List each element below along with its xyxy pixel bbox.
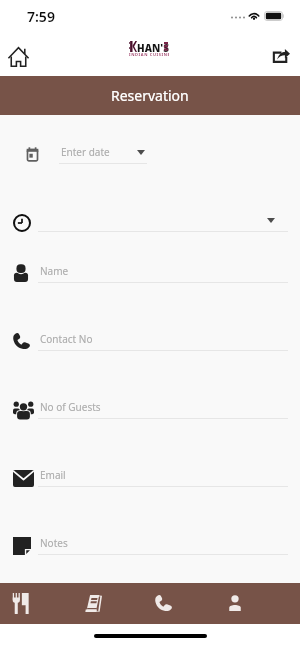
- staticText: Name: [40, 264, 69, 278]
- button[interactable]: Profile: [210, 583, 282, 624]
- staticText: Contact No: [40, 332, 93, 346]
- button[interactable]: Menu: [66, 583, 138, 624]
- button[interactable]: [8, 260, 292, 286]
- button[interactable]: Home: [0, 37, 37, 73]
- staticText: HAN'S: [137, 41, 169, 55]
- button[interactable]: [8, 328, 292, 354]
- button[interactable]: [8, 141, 292, 167]
- button[interactable]: Select time: [8, 209, 292, 235]
- button[interactable]: Share: [264, 37, 300, 73]
- staticText: Notes: [40, 536, 68, 550]
- staticText: 7:59: [27, 7, 55, 26]
- button[interactable]: Call: [138, 583, 210, 624]
- button[interactable]: [8, 396, 292, 422]
- staticText: No of Guests: [40, 400, 101, 414]
- staticText: INDIAN CUISINE: [129, 52, 169, 57]
- staticText: Reservation: [111, 86, 189, 105]
- button[interactable]: [8, 532, 292, 558]
- staticText: Enter date: [61, 145, 110, 159]
- staticText: Email: [40, 468, 66, 482]
- button[interactable]: [8, 464, 292, 490]
- button[interactable]: Restaurant: [0, 583, 72, 624]
